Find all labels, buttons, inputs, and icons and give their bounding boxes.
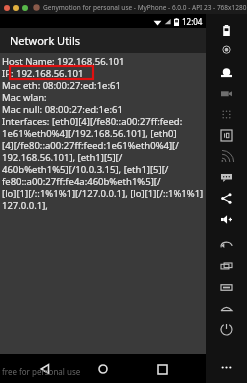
button[interactable]: Sensors xyxy=(206,104,247,125)
staticText: Host Name: 192.168.56.101 xyxy=(2,55,125,67)
staticText: 460b%eth1%5][/10.0.3.15], [eth1][5][/ xyxy=(2,163,169,175)
button[interactable]: Menu xyxy=(206,277,247,298)
button[interactable]: Share xyxy=(206,188,247,209)
button[interactable]: Power xyxy=(206,319,247,340)
staticText: IP: 192.168.56.101 xyxy=(2,67,84,79)
staticText: Mac null: 08:00:27:ed:1e:61 xyxy=(2,103,123,115)
button[interactable]: IP address highlight xyxy=(10,66,93,79)
button[interactable]: Rotate xyxy=(206,235,247,256)
button[interactable]: Recents xyxy=(148,355,176,383)
button[interactable]: Network xyxy=(206,146,247,167)
staticText: Genymotion for personal use - MyPhone - … xyxy=(43,3,247,12)
staticText: Interfaces: [eth0][4][/fe80::a00:27ff:fe… xyxy=(2,115,183,127)
staticText: Mac eth: 08:00:27:ed:1e:61 xyxy=(2,79,121,91)
staticText: 127.0.0.1], xyxy=(2,199,48,211)
button[interactable]: Camera xyxy=(206,62,247,83)
staticText: fe80::a00:27ff:fe4a:460b%eth1%5][/10.0.3… xyxy=(2,175,206,187)
button[interactable]: Copy xyxy=(206,256,247,277)
staticText: Mac wlan: xyxy=(2,91,47,103)
staticText: free for personal use xyxy=(2,366,81,377)
button[interactable]: GPS xyxy=(206,41,247,62)
staticText: [4][/fe80::a00:27ff:feed:1e61%eth0%4][/ xyxy=(2,139,179,151)
staticText: 1e61%eth0%4][/192.168.56.101], [eth0] xyxy=(2,127,177,139)
staticText: [lo][1][/::1%1%1][/127.0.0.1], [lo][1][/… xyxy=(2,187,206,199)
button[interactable]: More xyxy=(206,357,247,378)
button[interactable]: SMS xyxy=(206,167,247,188)
staticText: Network Utils xyxy=(10,33,81,48)
button[interactable]: Video xyxy=(206,83,247,104)
button[interactable]: Identifiers xyxy=(206,125,247,146)
staticText: 192.168.56.101], [eth1][5][/fe80::a00:27… xyxy=(2,151,206,163)
button[interactable]: Home xyxy=(206,298,247,319)
button[interactable]: Home xyxy=(89,355,117,383)
button[interactable]: Volume xyxy=(206,209,247,230)
button[interactable]: Battery xyxy=(206,20,247,41)
staticText: 12:04 xyxy=(182,16,203,27)
button[interactable]: Back xyxy=(31,355,59,383)
